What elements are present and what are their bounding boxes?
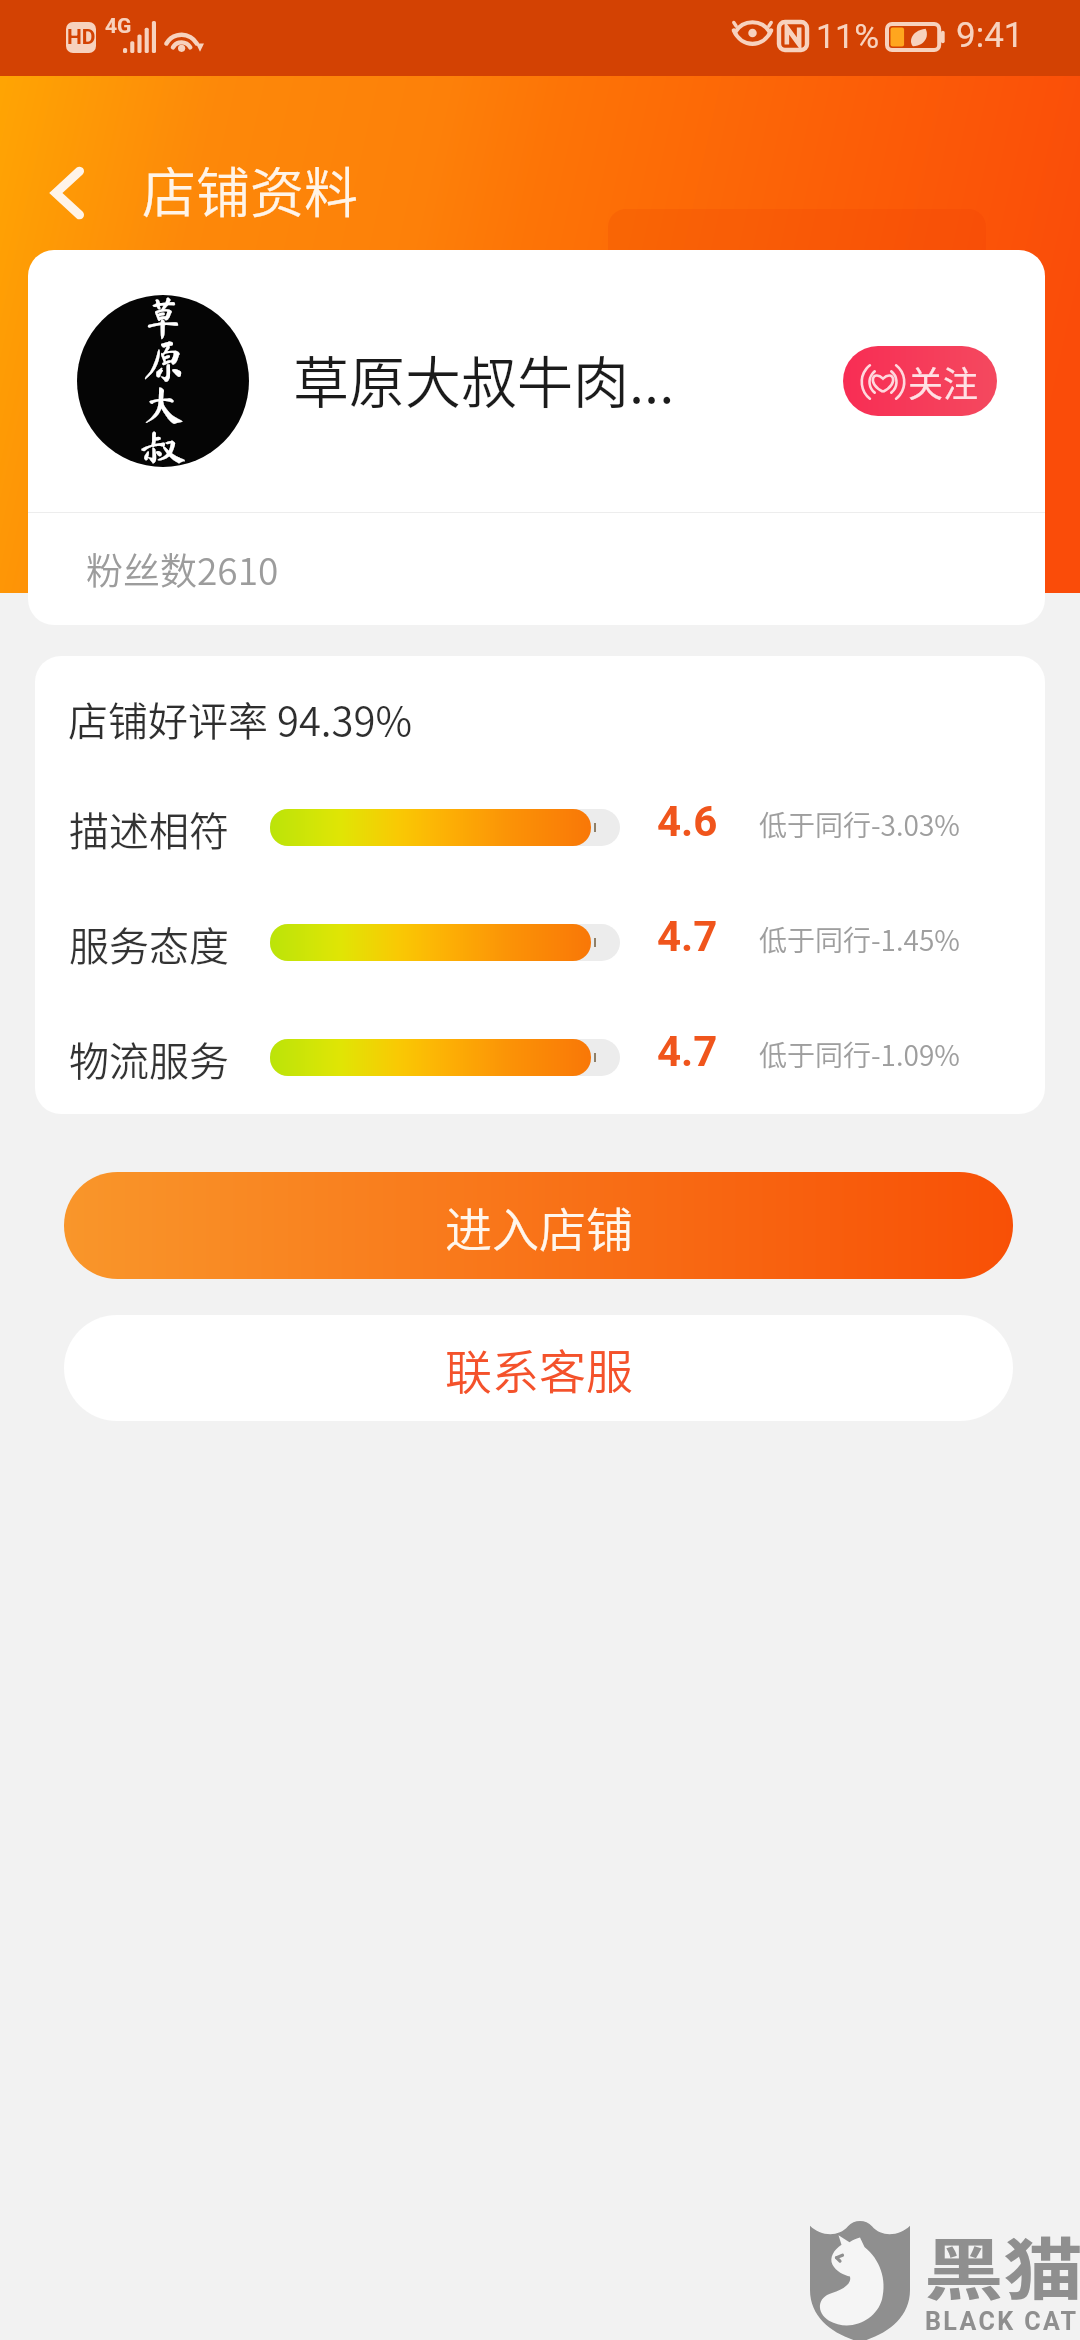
staticText: 4G xyxy=(105,14,132,39)
staticText: 4.7 xyxy=(657,1027,718,1076)
staticText: 低于同行-3.03% xyxy=(759,804,960,845)
button[interactable]: 进入店铺 xyxy=(64,1172,1013,1279)
staticText: 粉丝数2610 xyxy=(86,542,279,596)
staticText: 联系客服 xyxy=(445,1334,633,1402)
staticText: 草 原 大 叔 xyxy=(141,295,185,467)
staticText: 9:41 xyxy=(956,15,1024,56)
staticText: 11% xyxy=(816,16,880,56)
button[interactable]: 关注 xyxy=(843,346,997,416)
staticText: 描述相符 xyxy=(69,800,229,858)
staticText: HD xyxy=(67,25,96,50)
staticText: 黑猫 xyxy=(924,2217,1080,2314)
button[interactable]: 联系客服 xyxy=(64,1315,1013,1421)
staticText: 店铺资料 xyxy=(142,150,358,228)
staticText: 4.7 xyxy=(657,912,718,961)
staticText: 关注 xyxy=(908,356,979,407)
staticText: 草原大叔牛肉... xyxy=(293,338,675,419)
staticText: 物流服务 xyxy=(69,1030,229,1088)
staticText: 低于同行-1.09% xyxy=(759,1034,960,1075)
staticText: 4.6 xyxy=(657,797,718,846)
staticText: 进入店铺 xyxy=(445,1192,633,1260)
staticText: BLACK CAT xyxy=(925,2307,1079,2336)
staticText: 低于同行-1.45% xyxy=(759,919,960,960)
button[interactable] xyxy=(28,250,1045,512)
button[interactable]: Back xyxy=(28,150,108,236)
staticText: 店铺好评率 94.39% xyxy=(68,690,413,748)
staticText: 服务态度 xyxy=(69,915,229,973)
